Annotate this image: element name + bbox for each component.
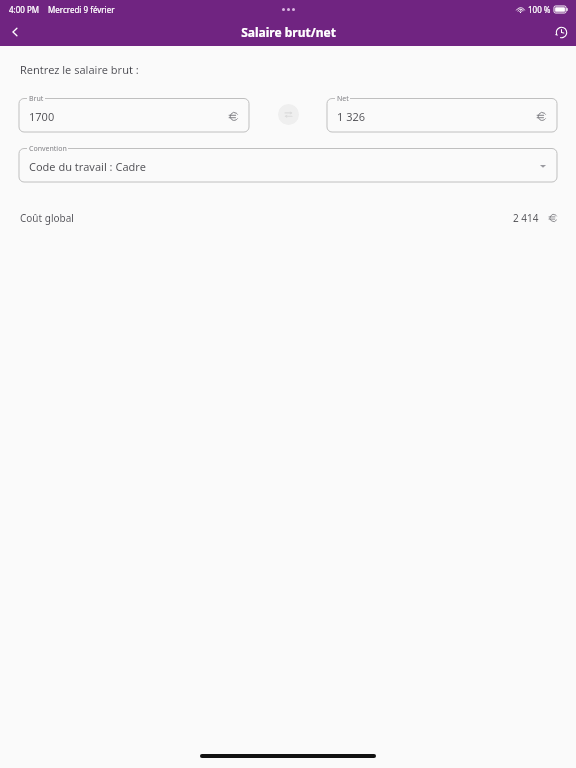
button[interactable]: Inverser brut et net bbox=[250, 93, 326, 133]
staticText: 2 414 bbox=[513, 211, 539, 225]
staticText: Mercredi 9 février bbox=[48, 4, 115, 15]
button[interactable]: History bbox=[546, 18, 576, 46]
staticText: 4:00 PM bbox=[9, 4, 40, 15]
button[interactable]: Brut bbox=[18, 93, 250, 133]
staticText: Code du travail : Cadre bbox=[29, 159, 146, 174]
staticText: Coût global bbox=[20, 211, 74, 225]
staticText: 100 % bbox=[528, 4, 551, 15]
staticText: Brut bbox=[29, 94, 44, 104]
button[interactable]: Convention bbox=[18, 143, 558, 183]
button[interactable]: Net bbox=[326, 93, 558, 133]
button[interactable]: Coût global bbox=[0, 207, 576, 229]
staticText: Salaire brut/net bbox=[241, 24, 336, 40]
staticText: 1700 bbox=[29, 109, 55, 124]
staticText: 1 326 bbox=[337, 109, 366, 124]
button[interactable]: Back bbox=[0, 18, 30, 46]
staticText: Net bbox=[337, 94, 349, 104]
staticText: Rentrez le salaire brut : bbox=[20, 62, 139, 77]
staticText: Convention bbox=[29, 144, 67, 154]
